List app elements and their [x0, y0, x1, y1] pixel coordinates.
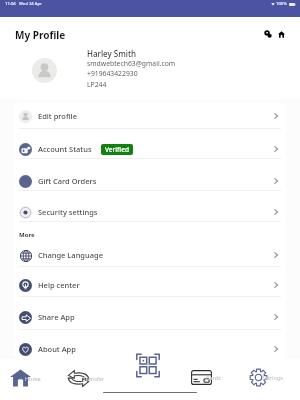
staticText: +919643422930 [87, 69, 138, 78]
staticText: Home [25, 375, 41, 382]
staticText: Help center [38, 280, 80, 290]
staticText: LP244 [87, 80, 107, 89]
button[interactable]: About App [14, 336, 286, 359]
staticText: Verified [105, 145, 129, 154]
staticText: 11:04 Wed 24 Apr [5, 1, 42, 7]
staticText: Change Language [38, 250, 103, 260]
button[interactable]: Share App [14, 304, 286, 330]
staticText: More [19, 231, 35, 239]
staticText: My Profile [15, 28, 66, 42]
button[interactable]: Customer support [260, 26, 276, 42]
staticText: smdwebtech63@gmail.com [87, 59, 176, 68]
button[interactable]: Help center [14, 272, 286, 298]
staticText: About App [38, 344, 76, 354]
staticText: 100% [276, 1, 287, 7]
button[interactable]: Transfer [68, 369, 111, 388]
button[interactable]: Edit profile [14, 103, 286, 129]
button[interactable]: Change Language [14, 242, 286, 268]
staticText: Security settings [38, 207, 98, 217]
button[interactable]: Security settings [14, 199, 286, 225]
staticText: Harley Smith [87, 48, 137, 59]
button[interactable]: Scan QR code [134, 353, 161, 378]
button[interactable]: Home [10, 369, 47, 387]
button[interactable]: Cards [191, 370, 227, 385]
staticText: Account Status [38, 144, 92, 154]
staticText: Gift Card Orders [38, 176, 97, 186]
button[interactable]: Account Status [14, 136, 286, 162]
staticText: Transfer [83, 375, 105, 382]
button[interactable]: Settings [249, 368, 289, 387]
staticText: Settings [262, 374, 283, 381]
staticText: Share App [38, 312, 75, 322]
staticText: Edit profile [38, 111, 77, 121]
staticText: Cards [206, 374, 221, 381]
button[interactable]: Gift Card Orders [14, 168, 286, 194]
button[interactable]: Home [273, 26, 289, 42]
